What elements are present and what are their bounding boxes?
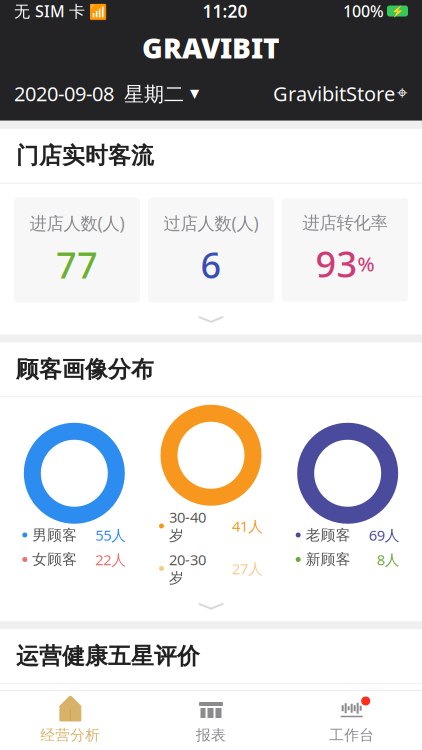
button[interactable]: 2020-09-08 星期二 bbox=[14, 76, 199, 111]
staticText: 女顾客 bbox=[32, 550, 77, 568]
staticText: 93 bbox=[315, 240, 357, 287]
staticText: ⚡ bbox=[391, 5, 404, 17]
staticText: 22人 bbox=[95, 550, 126, 569]
staticText: % bbox=[357, 250, 374, 277]
staticText: 门店实时客流 bbox=[16, 142, 154, 169]
staticText: GravibitStore bbox=[273, 80, 395, 107]
staticText: 进店转化率 bbox=[302, 212, 387, 234]
staticText: 报表 bbox=[196, 726, 226, 744]
button[interactable]: 工作台 bbox=[281, 691, 422, 750]
staticText: 2020-09-08 星期二 bbox=[14, 80, 184, 107]
staticText: 顾客画像分布 bbox=[16, 355, 154, 383]
button[interactable]: GravibitStore bbox=[273, 76, 408, 111]
staticText: 89 bbox=[324, 725, 380, 750]
staticText: 41人 bbox=[232, 516, 263, 536]
staticText: 55人 bbox=[95, 525, 126, 545]
staticText: 进店人数(人) bbox=[29, 212, 124, 235]
button[interactable]: 经营分析 bbox=[0, 691, 141, 750]
staticText: 男顾客 bbox=[32, 526, 77, 544]
staticText: 新顾客 bbox=[306, 550, 351, 568]
staticText: 11:20 bbox=[202, 0, 247, 22]
button[interactable]: 报表 bbox=[141, 691, 281, 750]
staticText: 30-40岁 bbox=[169, 507, 206, 545]
staticText: 运营健康五星评价 bbox=[16, 642, 200, 670]
staticText: ▼ bbox=[190, 87, 199, 100]
staticText: 6 bbox=[200, 241, 221, 288]
staticText: 69人 bbox=[369, 525, 400, 545]
staticText: 老顾客 bbox=[306, 526, 351, 544]
staticText: 8人 bbox=[377, 550, 400, 569]
staticText: 📶 bbox=[85, 1, 107, 21]
staticText: 20-30岁 bbox=[169, 550, 206, 587]
staticText: ⌖ bbox=[397, 84, 408, 103]
staticText: 77 bbox=[56, 241, 98, 288]
staticText: 无 SIM 卡 bbox=[14, 0, 85, 22]
staticText: 昨日综合健康度 bbox=[271, 700, 404, 723]
staticText: 工作台 bbox=[329, 726, 374, 744]
staticText: GRAVIBIT bbox=[142, 29, 280, 66]
staticText: 27人 bbox=[232, 559, 263, 578]
staticText: 经营分析 bbox=[40, 726, 100, 744]
staticText: 过店人数(人) bbox=[163, 212, 258, 235]
staticText: 100% bbox=[343, 0, 384, 22]
